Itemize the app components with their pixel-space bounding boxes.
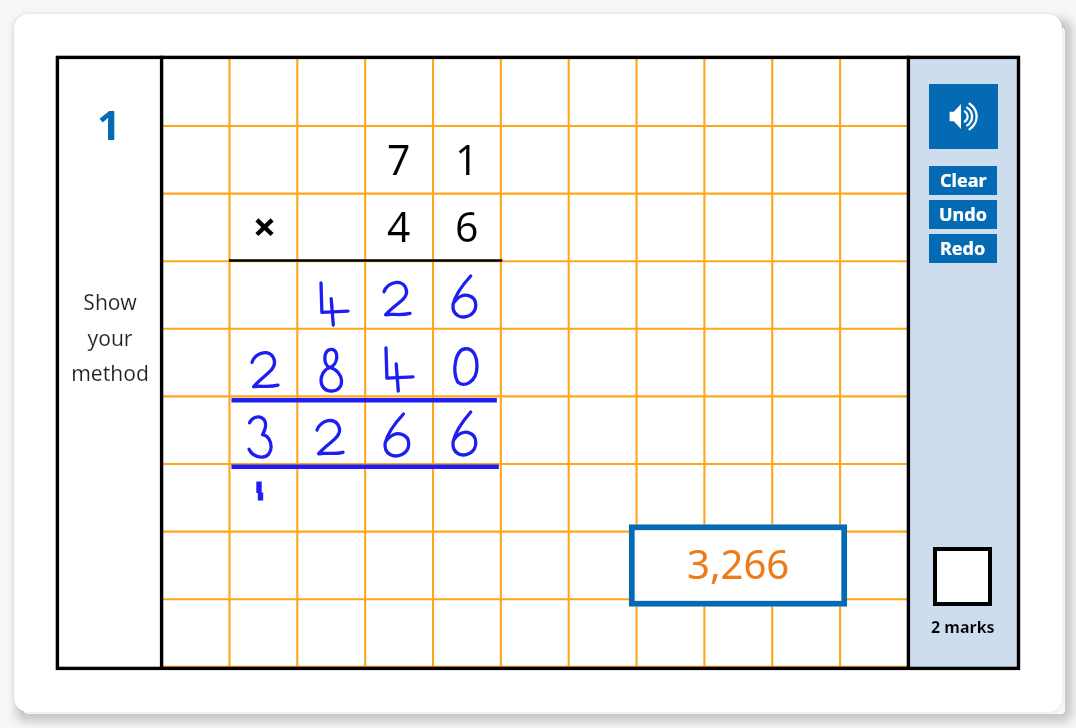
staticText: Clear	[940, 168, 987, 193]
staticText: 3,266	[687, 536, 790, 590]
staticText: 6	[455, 198, 479, 254]
button[interactable]: Read question aloud	[929, 84, 998, 149]
staticText: Undo	[939, 202, 987, 227]
staticText: 4	[387, 198, 411, 254]
staticText: 1	[97, 96, 122, 140]
staticText: Redo	[940, 236, 986, 261]
button[interactable]: Undo	[929, 200, 997, 229]
staticText: 7	[387, 131, 411, 187]
button[interactable]: Clear	[929, 166, 997, 195]
staticText: 2 marks	[931, 616, 995, 636]
staticText: Show your method	[71, 288, 149, 387]
button[interactable]: 3,266	[629, 521, 847, 604]
button[interactable]: Redo	[929, 234, 997, 263]
staticText: 1	[455, 131, 479, 187]
